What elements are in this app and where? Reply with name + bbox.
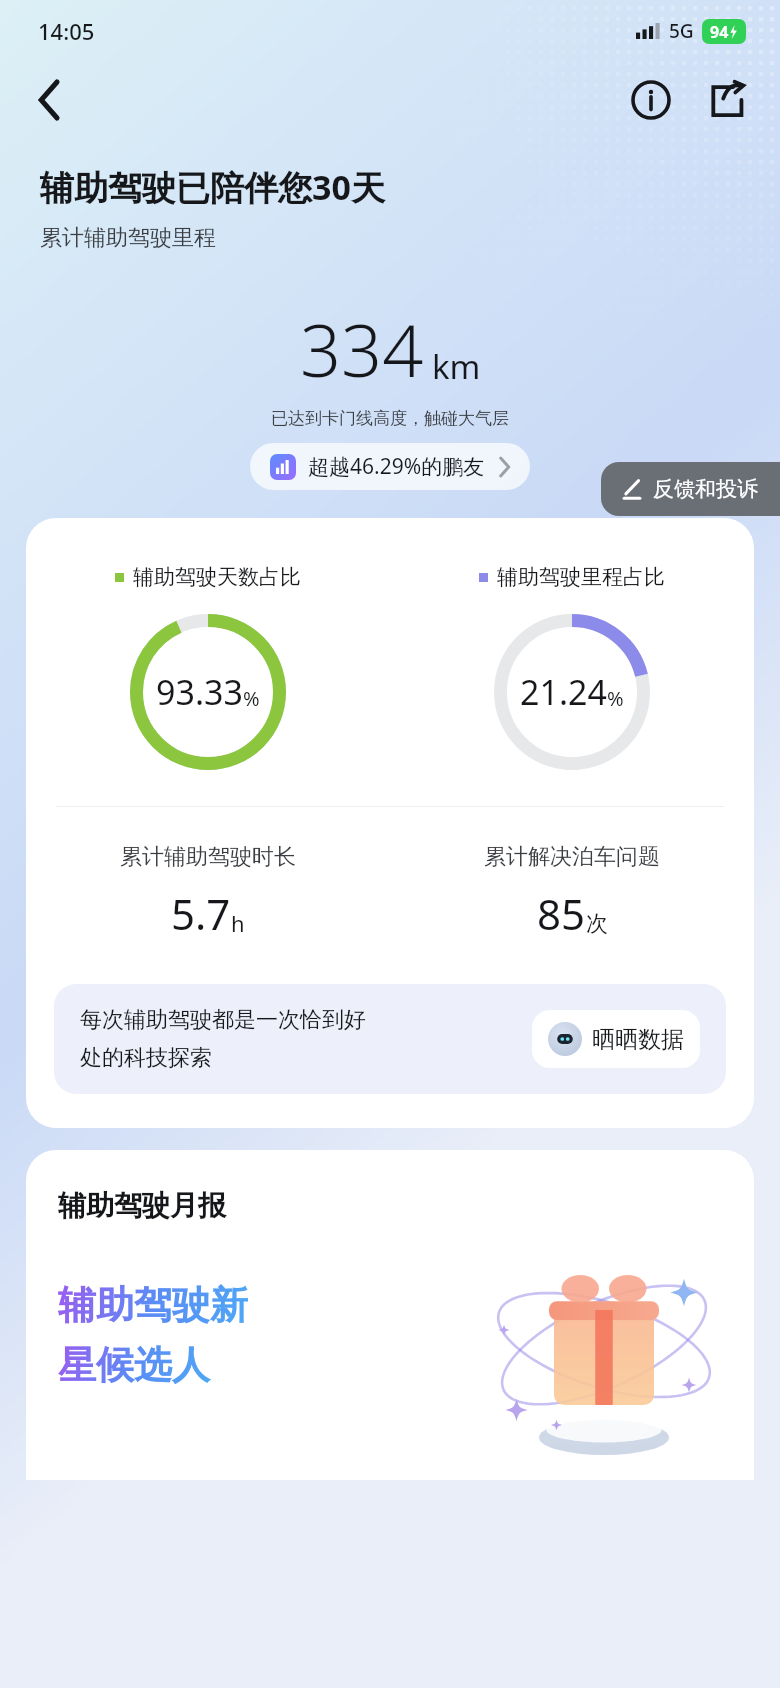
- staticText: 累计辅助驾驶时长: [120, 843, 296, 871]
- staticText: 334: [300, 300, 424, 398]
- staticText: 次: [586, 910, 608, 938]
- staticText: 累计辅助驾驶里程: [40, 224, 216, 252]
- button[interactable]: Back: [22, 72, 78, 128]
- staticText: 5.7: [171, 885, 231, 942]
- button[interactable]: 晒晒数据: [532, 1010, 700, 1068]
- button[interactable]: 超越46.29%的鹏友: [250, 443, 530, 490]
- staticText: 处的科技探索: [80, 1044, 212, 1072]
- staticText: 已达到卡门线高度，触碰大气层: [0, 408, 780, 429]
- staticText: 超越46.29%的鹏友: [308, 452, 485, 481]
- staticText: 累计解决泊车问题: [484, 843, 660, 871]
- staticText: km: [432, 344, 481, 389]
- staticText: 反馈和投诉: [653, 476, 758, 502]
- button[interactable]: Info: [622, 71, 680, 129]
- staticText: 85: [537, 885, 586, 942]
- staticText: 辅助驾驶天数占比: [133, 564, 301, 590]
- button[interactable]: 辅助驾驶月报: [26, 1150, 754, 1480]
- staticText: 晒晒数据: [592, 1025, 684, 1054]
- staticText: h: [231, 908, 245, 938]
- staticText: 辅助驾驶已陪伴您30天: [40, 164, 385, 210]
- staticText: 每次辅助驾驶都是一次恰到好: [80, 1006, 366, 1034]
- staticText: 5G: [669, 18, 694, 44]
- button[interactable]: 反馈和投诉: [601, 462, 780, 516]
- staticText: 辅助驾驶新: [58, 1281, 248, 1329]
- staticText: 93.33: [156, 669, 243, 715]
- staticText: %: [243, 685, 260, 712]
- staticText: %: [607, 685, 624, 712]
- staticText: 星候选人: [58, 1341, 210, 1389]
- staticText: 辅助驾驶里程占比: [497, 564, 665, 590]
- staticText: 94: [710, 21, 729, 43]
- staticText: 辅助驾驶月报: [58, 1188, 226, 1223]
- button[interactable]: Share: [698, 71, 756, 129]
- staticText: 21.24: [520, 669, 607, 715]
- staticText: 14:05: [38, 16, 95, 46]
